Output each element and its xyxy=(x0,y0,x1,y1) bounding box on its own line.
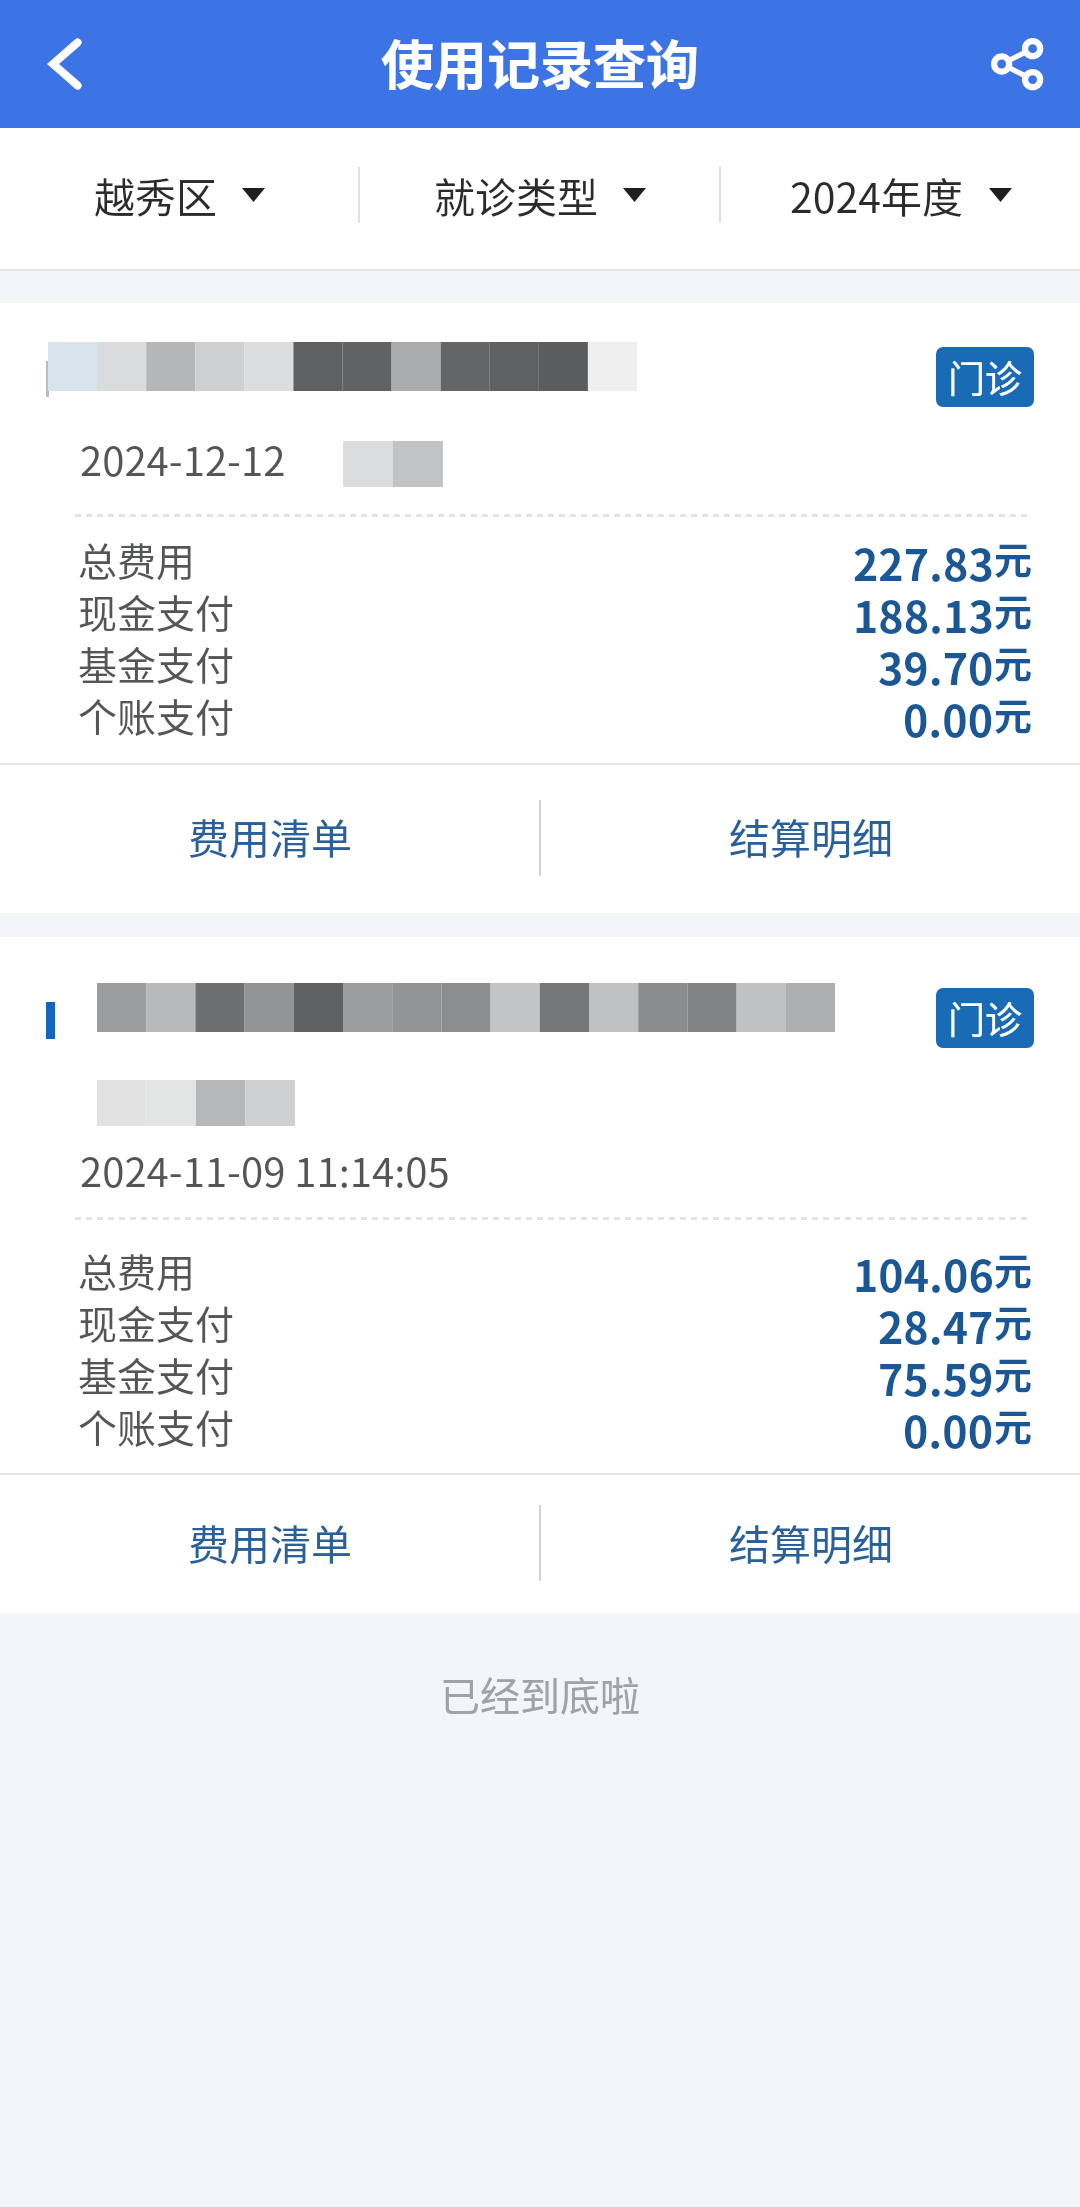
staticText: 28.47 xyxy=(878,1294,994,1346)
staticText: 0.00 xyxy=(903,1398,994,1450)
staticText: 个账支付 xyxy=(78,687,235,739)
staticText: 费用清单 xyxy=(188,806,352,865)
button[interactable]: 费用清单 xyxy=(0,760,539,910)
staticText: 227.83 xyxy=(853,531,994,583)
staticText: 结算明细 xyxy=(729,1512,893,1571)
staticText: 总费用 xyxy=(78,1242,196,1294)
button[interactable]: Share xyxy=(977,24,1057,104)
button[interactable]: 结算明细 xyxy=(541,1471,1080,1611)
staticText: 已经到底啦 xyxy=(440,1665,640,1723)
staticText: 元 xyxy=(994,530,1033,582)
staticText: 就诊类型 xyxy=(434,165,598,224)
staticText: 越秀区 xyxy=(94,165,217,224)
staticText: 2024-11-09 11:14:05 xyxy=(80,1141,450,1199)
staticText: 0.00 xyxy=(903,687,994,739)
staticText: 现金支付 xyxy=(78,583,235,635)
staticText: 188.13 xyxy=(853,583,994,635)
staticText: 2024年度 xyxy=(790,165,964,224)
staticText: 元 xyxy=(994,1293,1033,1345)
button[interactable]: 门诊 xyxy=(936,988,1034,1048)
staticText: 元 xyxy=(994,1345,1033,1397)
staticText: 元 xyxy=(994,634,1033,686)
staticText: 元 xyxy=(994,582,1033,634)
button[interactable]: 结算明细 xyxy=(541,760,1080,910)
staticText: 元 xyxy=(994,1397,1033,1449)
staticText: 个账支付 xyxy=(78,1398,235,1450)
staticText: 费用清单 xyxy=(188,1512,352,1571)
button[interactable]: Back xyxy=(20,19,110,109)
staticText: 基金支付 xyxy=(78,1346,235,1398)
staticText: 104.06 xyxy=(853,1242,994,1294)
staticText: 元 xyxy=(994,1241,1033,1293)
button[interactable]: 就诊类型 xyxy=(360,124,719,265)
button[interactable]: 门诊 xyxy=(936,347,1034,407)
staticText: 门诊 xyxy=(948,350,1022,404)
button[interactable]: 越秀区 xyxy=(0,124,358,265)
staticText: 现金支付 xyxy=(78,1294,235,1346)
staticText: 元 xyxy=(994,686,1033,738)
staticText: 2024-12-12 xyxy=(80,430,286,488)
button[interactable]: 费用清单 xyxy=(0,1471,539,1611)
staticText: 75.59 xyxy=(878,1346,994,1398)
staticText: 使用记录查询 xyxy=(381,24,699,101)
staticText: 总费用 xyxy=(78,531,196,583)
staticText: 门诊 xyxy=(948,991,1022,1045)
staticText: 结算明细 xyxy=(729,806,893,865)
staticText: 39.70 xyxy=(878,635,994,687)
staticText: 基金支付 xyxy=(78,635,235,687)
button[interactable]: 2024年度 xyxy=(721,124,1080,265)
